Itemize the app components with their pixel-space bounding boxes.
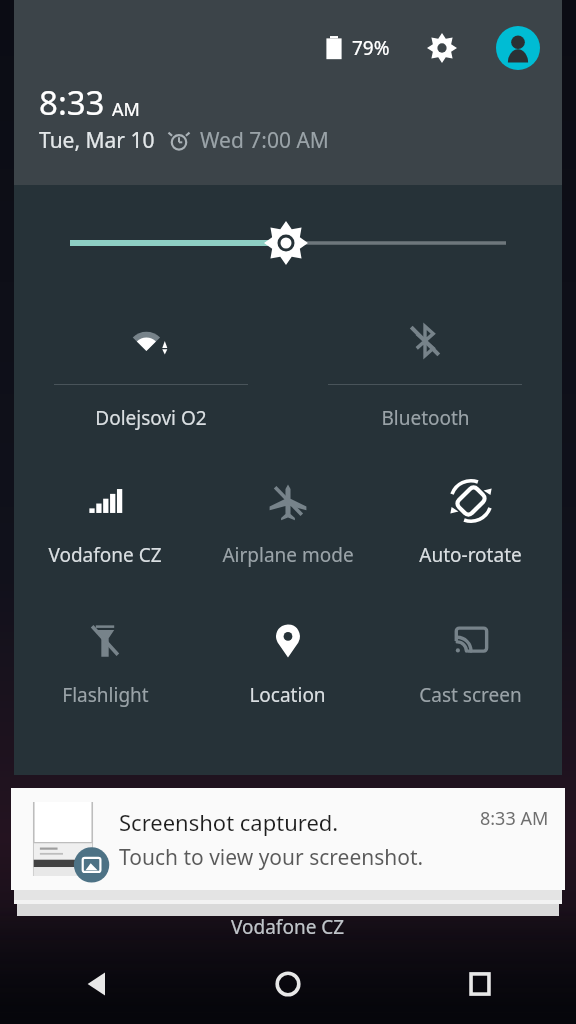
staticText: 8:33 AM — [480, 806, 549, 831]
button[interactable]: Home — [192, 944, 384, 1024]
button[interactable]: Settings — [420, 26, 464, 70]
button[interactable]: Back — [0, 944, 192, 1024]
button[interactable]: Cast screen — [379, 600, 562, 740]
button[interactable]: Bluetooth — [288, 300, 562, 460]
staticText: Vodafone CZ — [48, 542, 162, 568]
button[interactable]: Screenshot captured. — [11, 788, 565, 890]
button[interactable]: Recent apps — [384, 944, 576, 1024]
staticText: Auto-rotate — [419, 542, 522, 568]
staticText: Airplane mode — [222, 542, 354, 568]
staticText: Screenshot captured. — [119, 807, 339, 837]
staticText: 79% — [352, 35, 390, 61]
staticText: Bluetooth — [381, 405, 470, 431]
staticText: Touch to view your screenshot. — [119, 843, 424, 872]
button[interactable]: Flashlight — [14, 600, 196, 740]
staticText: Dolejsovi O2 — [95, 405, 207, 431]
staticText: Cast screen — [419, 682, 522, 708]
staticText: Tue, Mar 10 — [39, 126, 155, 155]
staticText: Wed 7:00 AM — [200, 126, 329, 155]
staticText: Flashlight — [62, 682, 149, 708]
staticText: AM — [112, 97, 140, 122]
button[interactable]: Location — [196, 600, 379, 740]
button[interactable]: User profile — [496, 26, 540, 70]
staticText: Location — [249, 682, 326, 708]
button[interactable]: Vodafone CZ — [14, 460, 196, 600]
button[interactable]: Auto-rotate — [379, 460, 562, 600]
button[interactable]: Dolejsovi O2 — [14, 300, 288, 460]
button[interactable]: Brightness — [14, 185, 562, 300]
staticText: 8:33 — [39, 80, 105, 125]
button[interactable]: Airplane mode — [196, 460, 379, 600]
staticText: Vodafone CZ — [231, 914, 345, 940]
